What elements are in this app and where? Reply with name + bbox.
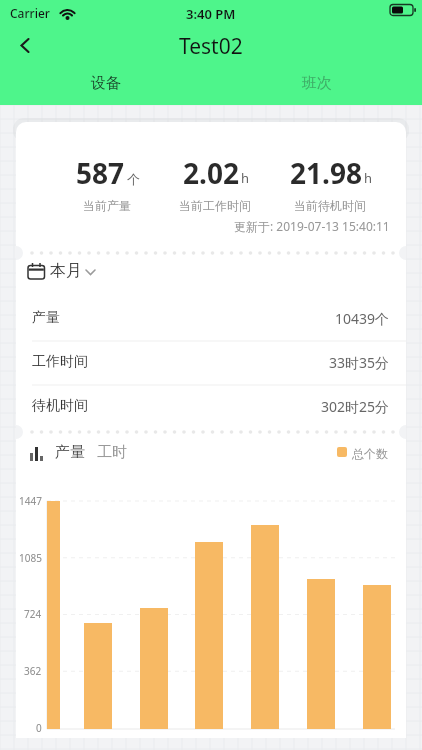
staticText: 当前工作时间 (179, 198, 251, 213)
staticText: 1447 (19, 494, 42, 508)
staticText: 总个数 (352, 446, 388, 461)
staticText: 2.02 (183, 154, 239, 192)
staticText: 587 (76, 154, 125, 192)
staticText: 工作时间 (32, 353, 88, 371)
staticText: 302时25分 (321, 397, 390, 416)
staticText: 10439个 (335, 309, 390, 328)
staticText: h (364, 169, 373, 187)
staticText: 工时 (97, 443, 127, 462)
staticText: h (241, 169, 250, 187)
staticText: 0 (36, 721, 42, 735)
staticText: 3:40 PM (186, 5, 236, 23)
staticText: 724 (24, 607, 42, 621)
staticText: 本月 (50, 261, 82, 281)
staticText: 待机时间 (32, 397, 88, 415)
staticText: 33时35分 (329, 353, 390, 372)
staticText: 当前产量 (83, 198, 131, 213)
staticText: 362 (24, 664, 42, 678)
staticText: Carrier (10, 5, 50, 21)
staticText: 产量 (55, 443, 85, 462)
staticText: 更新于: 2019-07-13 15:40:11 (234, 218, 390, 234)
staticText: 当前待机时间 (294, 198, 366, 213)
staticText: Test02 (179, 32, 243, 61)
staticText: 1085 (19, 551, 42, 565)
staticText: 产量 (32, 309, 60, 327)
staticText: 班次 (302, 74, 332, 93)
staticText: 设备 (91, 74, 121, 93)
staticText: 个 (127, 171, 140, 187)
staticText: 21.98 (290, 154, 362, 192)
